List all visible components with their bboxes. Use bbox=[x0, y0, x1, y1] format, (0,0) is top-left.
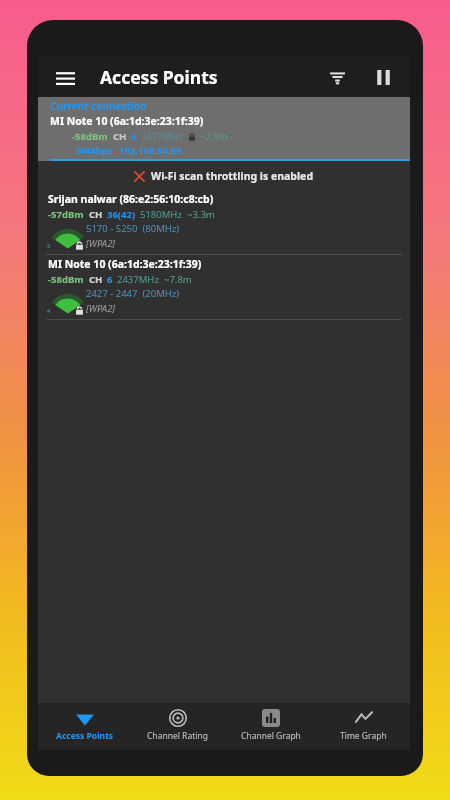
button[interactable]: Filter bbox=[320, 60, 354, 94]
staticText: [WPA2] bbox=[86, 302, 116, 315]
staticText: CH bbox=[89, 273, 103, 286]
staticText: -58dBm bbox=[72, 130, 108, 143]
staticText: Access Points bbox=[56, 730, 114, 742]
staticText: 5 bbox=[47, 242, 51, 250]
staticText: 2437MHz bbox=[117, 273, 159, 286]
staticText: 96Mbps bbox=[76, 144, 113, 157]
button[interactable]: Access Points bbox=[38, 703, 131, 750]
staticText: Access Points bbox=[100, 65, 218, 89]
staticText: 4 bbox=[47, 307, 51, 315]
staticText: CH bbox=[89, 208, 103, 221]
staticText: Wi-Fi scan throttling is enabled bbox=[151, 169, 314, 183]
staticText: 2437MHz bbox=[141, 130, 183, 143]
staticText: 6 bbox=[131, 130, 137, 143]
staticText: ~7.8m bbox=[164, 273, 192, 286]
button[interactable]: MI Note 10 (6a:1d:3e:23:1f:39) bbox=[38, 255, 410, 319]
button[interactable]: Srijan nalwar (86:e2:56:10:c8:cb) bbox=[38, 190, 410, 254]
staticText: Channel Graph bbox=[241, 730, 301, 742]
staticText: 36(42) bbox=[107, 208, 136, 221]
staticText: Srijan nalwar (86:e2:56:10:c8:cb) bbox=[48, 192, 214, 206]
staticText: 5170 - 5250 (80MHz) bbox=[86, 222, 180, 235]
staticText: CH bbox=[113, 130, 127, 143]
staticText: MI Note 10 (6a:1d:3e:23:1f:39) bbox=[50, 114, 204, 128]
staticText: [WPA2] bbox=[86, 237, 116, 250]
button[interactable]: Channel Rating bbox=[131, 703, 224, 750]
staticText: -58dBm bbox=[48, 273, 84, 286]
button[interactable]: Pause scanning bbox=[366, 60, 400, 94]
staticText: Current connection bbox=[50, 99, 147, 113]
button[interactable]: Open navigation menu bbox=[50, 62, 80, 92]
staticText: 5180MHz bbox=[140, 208, 182, 221]
staticText: ~7.8m bbox=[200, 130, 228, 143]
staticText: Time Graph bbox=[340, 730, 387, 742]
staticText: ~3.3m bbox=[187, 208, 215, 221]
button[interactable]: Channel Graph bbox=[224, 703, 317, 750]
staticText: -57dBm bbox=[48, 208, 84, 221]
button[interactable]: Time Graph bbox=[317, 703, 410, 750]
staticText: 192.168.50.69 bbox=[119, 144, 182, 157]
staticText: 2427 - 2447 (20MHz) bbox=[86, 287, 180, 300]
staticText: Channel Rating bbox=[147, 730, 208, 742]
staticText: MI Note 10 (6a:1d:3e:23:1f:39) bbox=[48, 257, 202, 271]
staticText: 6 bbox=[107, 273, 113, 286]
